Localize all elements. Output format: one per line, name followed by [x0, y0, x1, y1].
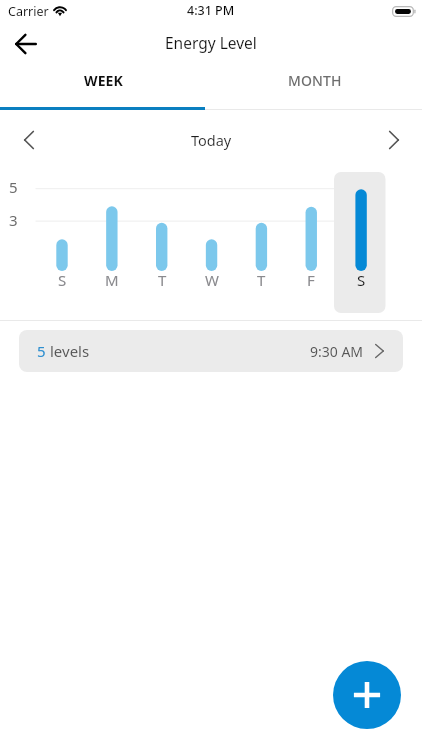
- staticText: T: [257, 270, 266, 290]
- staticText: W: [205, 270, 219, 290]
- button[interactable]: S: [38, 172, 86, 300]
- button[interactable]: W: [188, 172, 236, 300]
- staticText: Energy Level: [165, 32, 257, 53]
- button[interactable]: MONTH: [209, 62, 420, 110]
- button[interactable]: F: [287, 172, 335, 300]
- staticText: 4:31 PM: [187, 2, 235, 19]
- staticText: S: [58, 270, 67, 290]
- staticText: WEEK: [84, 71, 123, 90]
- staticText: 3: [9, 210, 18, 230]
- staticText: 5: [9, 177, 18, 197]
- staticText: T: [158, 270, 167, 290]
- staticText: Today: [191, 130, 232, 150]
- button[interactable]: S: [337, 172, 385, 300]
- staticText: MONTH: [288, 71, 342, 90]
- button[interactable]: T: [138, 172, 186, 300]
- staticText: S: [357, 270, 366, 290]
- staticText: 9:30 AM: [310, 342, 364, 361]
- button[interactable]: Previous week: [9, 120, 49, 160]
- staticText: M: [105, 270, 119, 290]
- button[interactable]: 5: [19, 330, 403, 372]
- staticText: levels: [50, 341, 90, 361]
- button[interactable]: Next week: [374, 120, 414, 160]
- button[interactable]: M: [88, 172, 136, 300]
- staticText: F: [307, 270, 315, 290]
- staticText: 5: [37, 341, 46, 361]
- staticText: Carrier: [8, 3, 49, 20]
- button[interactable]: T: [237, 172, 285, 300]
- button[interactable]: Back: [4, 26, 48, 62]
- button[interactable]: Add entry: [333, 661, 401, 729]
- button[interactable]: WEEK: [0, 62, 209, 110]
